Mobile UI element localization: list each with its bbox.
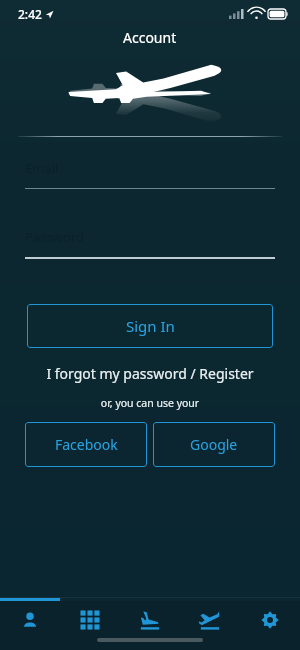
button[interactable]: Facebook: [25, 422, 147, 467]
button[interactable]: Apps: [60, 601, 120, 638]
staticText: Google: [190, 435, 238, 454]
button[interactable]: Settings: [240, 601, 300, 638]
staticText: Sign In: [126, 316, 175, 336]
button[interactable]: Arrivals: [120, 601, 180, 638]
staticText: Account: [123, 28, 177, 47]
staticText: I forgot my password / Register: [0, 364, 300, 383]
staticText: or, you can use your: [0, 396, 300, 410]
button[interactable]: Password: [0, 228, 300, 259]
button[interactable]: Email: [0, 159, 300, 189]
staticText: 2:42: [18, 6, 42, 22]
staticText: Facebook: [55, 435, 118, 454]
button[interactable]: Profile: [0, 601, 60, 638]
button[interactable]: Departures: [180, 601, 240, 638]
button[interactable]: Google: [153, 422, 275, 467]
button[interactable]: Sign In: [27, 304, 273, 348]
